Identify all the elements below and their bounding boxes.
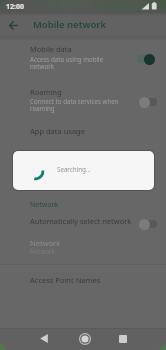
button[interactable] bbox=[115, 331, 130, 346]
staticText: Searching… bbox=[57, 165, 91, 173]
button[interactable] bbox=[0, 121, 166, 143]
staticText: Mobile network bbox=[33, 18, 106, 31]
button[interactable] bbox=[139, 218, 157, 230]
button[interactable]: Searching… bbox=[13, 151, 154, 190]
staticText: App data usage bbox=[30, 126, 85, 136]
button[interactable] bbox=[4, 16, 22, 34]
staticText: Access data using mobile bbox=[30, 55, 104, 63]
button[interactable] bbox=[0, 212, 166, 236]
staticText: Network bbox=[30, 200, 59, 209]
button[interactable] bbox=[77, 331, 92, 346]
staticText: Network bbox=[30, 247, 55, 255]
staticText: Access Point Names bbox=[30, 275, 101, 285]
staticText: roaming bbox=[30, 104, 55, 112]
button[interactable] bbox=[0, 42, 166, 74]
staticText: Mobile data bbox=[30, 44, 72, 54]
staticText: Roaming bbox=[30, 87, 62, 97]
staticText: network bbox=[30, 62, 55, 70]
staticText: Automatically select network bbox=[30, 216, 132, 226]
button[interactable] bbox=[137, 53, 155, 65]
button[interactable] bbox=[0, 85, 166, 117]
staticText: Connect to data services when bbox=[30, 97, 119, 105]
button[interactable] bbox=[36, 331, 51, 346]
button[interactable] bbox=[0, 265, 166, 291]
button[interactable] bbox=[139, 96, 157, 108]
staticText: 12:00 bbox=[6, 2, 24, 12]
staticText: Network bbox=[30, 238, 61, 248]
